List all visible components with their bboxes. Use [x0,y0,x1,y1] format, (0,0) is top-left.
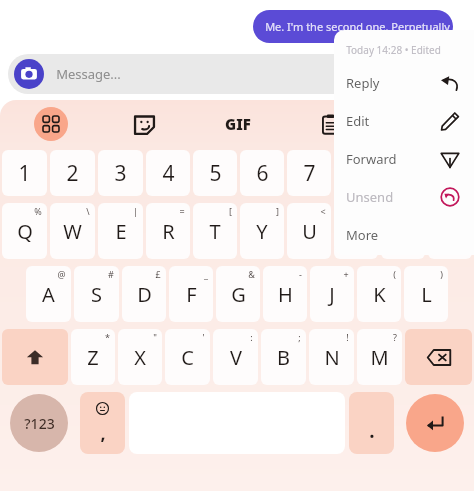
button[interactable]: F [169,266,213,322]
button[interactable]: 3 [98,150,143,196]
button[interactable]: 7 [287,150,331,196]
button[interactable]: V [213,329,258,385]
button[interactable]: Camera [8,54,456,94]
staticText: F [186,281,197,308]
button[interactable]: Forward [334,140,474,178]
staticText: Me. I'm the second one. Perpetually [265,19,450,34]
staticText: Forward [346,150,397,168]
button[interactable]: G [216,266,260,322]
staticText: U [302,218,317,245]
staticText: ( [393,268,396,280]
button[interactable]: Enter [398,392,472,454]
button[interactable]: M [357,329,402,385]
button[interactable]: . [349,392,394,454]
staticText: H [278,281,293,308]
staticText: Z [87,344,99,371]
staticText: @ [57,268,66,280]
staticText: M [370,344,389,371]
button[interactable]: 4 [146,150,190,196]
button[interactable]: 5 [193,150,237,196]
button[interactable]: Settings [377,100,470,148]
button[interactable]: Edit [334,102,474,140]
button[interactable]: I [334,203,378,259]
staticText: J [329,281,335,308]
staticText: Q [17,218,33,245]
button[interactable]: 2 [50,150,95,196]
button[interactable]: Me. I'm the second one. Perpetually [253,10,453,43]
button[interactable]: A [26,266,71,322]
staticText: 6 [256,159,269,188]
staticText: 8 [350,159,363,188]
button[interactable]: Apps [4,100,98,148]
staticText: ' [202,331,205,343]
staticText: [ [229,205,232,217]
staticText: + [343,268,349,280]
button[interactable]: 1 [2,150,47,196]
staticText: 0 [444,159,457,188]
button[interactable]: B [261,329,306,385]
staticText: W [63,218,82,245]
button[interactable]: 6 [240,150,284,196]
button[interactable]: 0 [428,150,472,196]
button[interactable]: K [357,266,401,322]
staticText: ; [298,331,301,343]
button[interactable]: GIF [191,100,284,148]
staticText: Message... [56,65,121,83]
staticText: ? [393,331,397,343]
button[interactable]: Emoji and comma [80,392,125,454]
button[interactable]: Camera [14,59,44,89]
button[interactable]: W [50,203,95,259]
button[interactable]: Z [71,329,115,385]
button[interactable]: N [309,329,354,385]
button[interactable]: P [428,203,472,259]
staticText: ?123 [24,414,55,433]
button[interactable]: ?123 [2,392,76,454]
staticText: < [320,205,326,217]
staticText: _ [204,268,208,280]
button[interactable]: H [263,266,307,322]
button[interactable]: Unsend [334,178,474,216]
button[interactable]: T [193,203,237,259]
button[interactable]: D [122,266,166,322]
button[interactable]: X [118,329,162,385]
button[interactable]: J [310,266,354,322]
staticText: ] [276,205,279,217]
staticText: 5 [209,159,222,188]
button[interactable]: R [146,203,190,259]
staticText: More [346,226,379,244]
staticText: X [134,344,146,371]
button[interactable]: Clipboard [284,100,377,148]
staticText: V [230,344,242,371]
staticText: B [277,344,290,371]
button[interactable]: 9 [381,150,425,196]
button[interactable]: 8 [334,150,378,196]
button[interactable]: More [334,216,474,254]
button[interactable]: S [74,266,119,322]
button[interactable]: Q [2,203,47,259]
button[interactable]: C [165,329,210,385]
staticText: GIF [225,114,251,134]
button[interactable]: U [287,203,331,259]
button[interactable]: Y [240,203,284,259]
button[interactable]: L [404,266,448,322]
staticText: " [153,331,157,343]
staticText: & [248,268,255,280]
staticText: D [137,281,152,308]
staticText: , [100,421,106,446]
button[interactable]: Reply [334,64,474,102]
staticText: . [369,418,375,444]
button[interactable]: E [98,203,143,259]
staticText: L [421,281,432,308]
staticText: Unsend [346,188,394,206]
staticText: S [91,281,102,308]
button[interactable]: Stickers [98,100,191,148]
button[interactable]: Shift [2,329,68,385]
button[interactable]: Backspace [405,329,472,385]
staticText: 4 [162,159,175,188]
